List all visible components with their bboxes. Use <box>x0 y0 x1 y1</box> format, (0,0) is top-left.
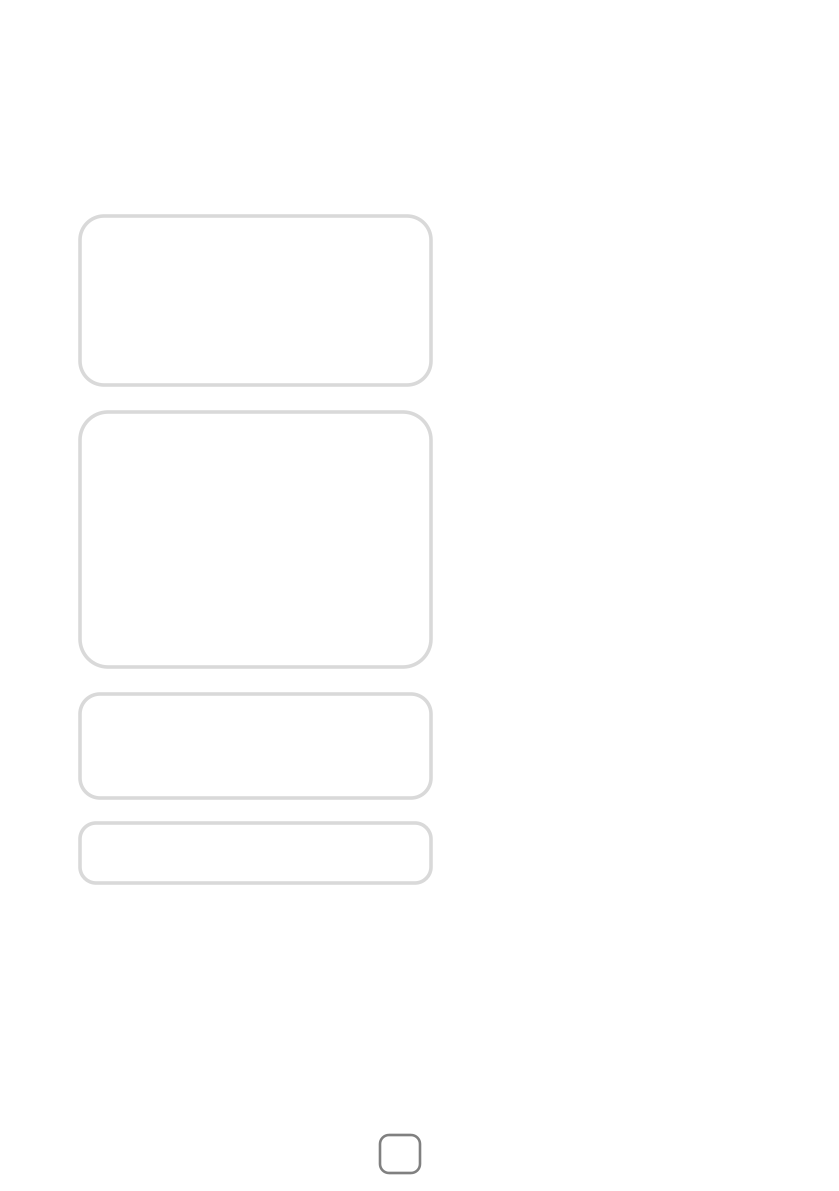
button[interactable]: Placeholder card <box>80 216 431 385</box>
button[interactable]: Action <box>380 1135 420 1173</box>
button[interactable]: Placeholder card <box>80 694 431 798</box>
button[interactable]: Placeholder card <box>80 823 431 883</box>
button[interactable]: Placeholder card <box>80 412 431 667</box>
